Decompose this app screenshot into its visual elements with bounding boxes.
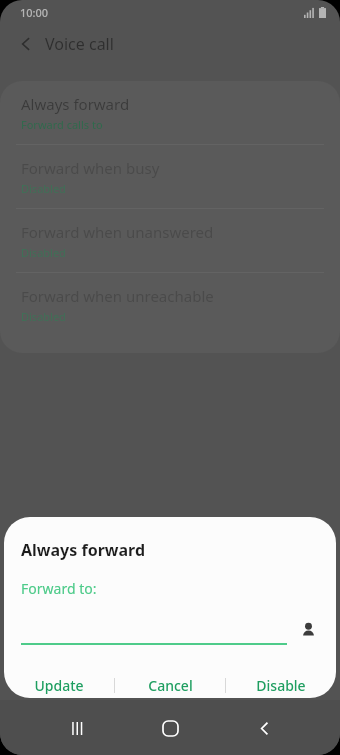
button[interactable]: Home — [155, 713, 185, 743]
staticText: 10:00 — [20, 5, 49, 20]
button[interactable]: Cancel — [115, 673, 225, 698]
button[interactable]: Disable — [226, 673, 336, 698]
staticText: Forward when busy — [21, 158, 160, 178]
staticText: Always forward — [21, 94, 130, 114]
staticText: Forward when unanswered — [21, 222, 214, 242]
staticText: Disabled — [21, 309, 66, 324]
staticText: Cancel — [148, 676, 193, 695]
button[interactable]: Always forward — [0, 81, 340, 144]
staticText: Disable — [256, 676, 306, 695]
staticText: Always forward — [21, 539, 146, 561]
button[interactable]: Pick contact — [297, 618, 319, 640]
button[interactable]: Update — [4, 673, 114, 698]
staticText: Forward calls to — [21, 117, 103, 132]
button[interactable]: Recents — [62, 714, 90, 742]
staticText: Disabled — [21, 181, 66, 196]
staticText: Voice call — [45, 33, 114, 55]
staticText: Disabled — [21, 245, 66, 260]
button[interactable]: Back — [12, 30, 40, 58]
button[interactable]: Back — [250, 714, 278, 742]
staticText: Forward when unreachable — [21, 286, 214, 306]
staticText: Forward to: — [21, 579, 97, 598]
staticText: Update — [34, 676, 84, 695]
